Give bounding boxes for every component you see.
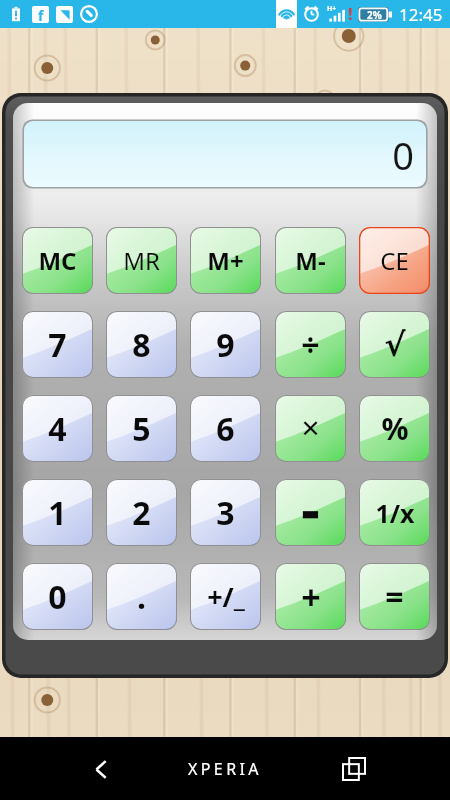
staticText: 12:45 xyxy=(399,3,443,26)
button[interactable]: 7 xyxy=(22,311,93,378)
staticText: M- xyxy=(295,244,326,277)
button[interactable]: 3 xyxy=(190,479,261,546)
staticText: 4 xyxy=(48,407,67,451)
button[interactable]: 8 xyxy=(106,311,177,378)
staticText: 1/x xyxy=(375,496,415,530)
staticText: 5 xyxy=(132,407,151,451)
staticText: 3 xyxy=(216,491,235,535)
button[interactable]: 1 xyxy=(22,479,93,546)
staticText: CE xyxy=(380,244,409,277)
button[interactable]: 1/x xyxy=(359,479,430,546)
staticText: 0 xyxy=(48,575,67,619)
button[interactable]: ÷ xyxy=(275,311,346,378)
staticText: 9 xyxy=(216,323,235,367)
button[interactable]: Back xyxy=(78,746,124,792)
staticText: 1 xyxy=(48,491,67,535)
staticText: ! xyxy=(348,3,353,25)
button[interactable]: +/_ xyxy=(190,563,261,630)
button[interactable]: 0 xyxy=(22,563,93,630)
button[interactable]: MC xyxy=(22,227,93,294)
staticText: MR xyxy=(123,244,160,277)
staticText: +/_ xyxy=(207,578,245,615)
button[interactable]: 4 xyxy=(22,395,93,462)
staticText: 6 xyxy=(216,407,235,451)
button[interactable]: 5 xyxy=(106,395,177,462)
staticText: . xyxy=(137,575,146,619)
staticText: ✕ xyxy=(300,415,321,443)
staticText: H+ xyxy=(327,4,337,14)
staticText: 2 xyxy=(132,491,151,535)
staticText: % xyxy=(381,408,409,449)
button[interactable]: . xyxy=(106,563,177,630)
staticText: ▬ xyxy=(301,501,320,524)
staticText: MC xyxy=(38,244,77,277)
staticText: 2% xyxy=(367,8,382,22)
staticText: M+ xyxy=(207,244,244,277)
button[interactable]: 6 xyxy=(190,395,261,462)
staticText: 8 xyxy=(132,323,151,367)
staticText: XPERIA xyxy=(188,758,262,780)
staticText: √ xyxy=(384,326,406,363)
staticText: 0 xyxy=(384,129,414,181)
button[interactable]: ✕ xyxy=(275,395,346,462)
staticText: f xyxy=(38,6,44,23)
button[interactable]: % xyxy=(359,395,430,462)
button[interactable]: = xyxy=(359,563,430,630)
button[interactable]: MR xyxy=(106,227,177,294)
staticText: + xyxy=(301,574,321,620)
button[interactable]: M- xyxy=(275,227,346,294)
button[interactable]: 9 xyxy=(190,311,261,378)
staticText: = xyxy=(385,575,404,619)
button[interactable]: √ xyxy=(359,311,430,378)
button[interactable]: XPERIA xyxy=(188,758,262,780)
button[interactable]: + xyxy=(275,563,346,630)
button[interactable]: 2 xyxy=(106,479,177,546)
staticText: 7 xyxy=(48,323,67,367)
button[interactable]: CE xyxy=(359,227,430,294)
button[interactable]: M+ xyxy=(190,227,261,294)
staticText: ÷ xyxy=(301,323,320,367)
button[interactable]: Recent apps xyxy=(331,746,377,792)
button[interactable]: ▬ xyxy=(275,479,346,546)
